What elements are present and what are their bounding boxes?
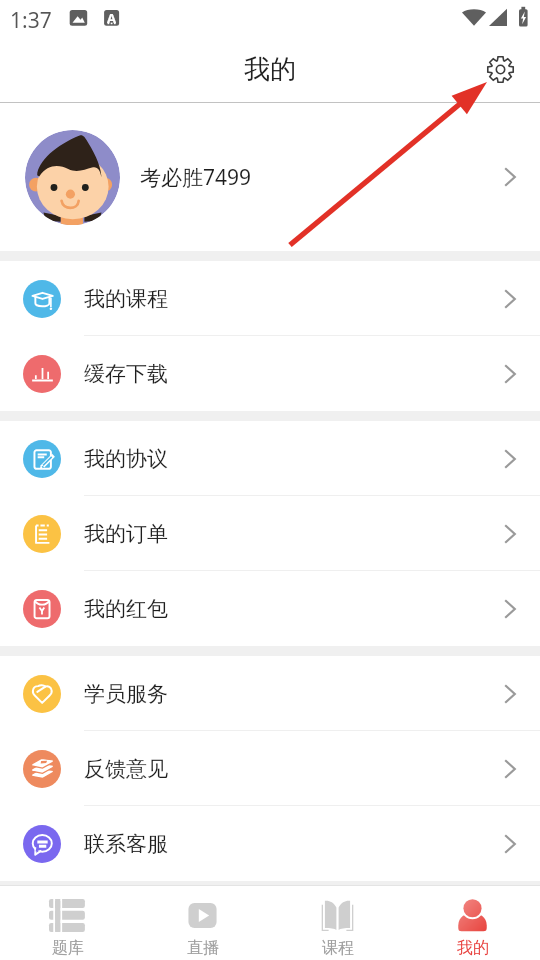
button[interactable]: 联系客服 <box>0 806 540 881</box>
button[interactable]: 反馈意见 <box>0 731 540 806</box>
button[interactable]: 我的协议 <box>0 421 540 496</box>
staticText: 联系客服 <box>84 831 168 857</box>
staticText: A <box>107 9 116 27</box>
staticText: 学员服务 <box>84 681 168 707</box>
staticText: 缓存下载 <box>84 361 168 387</box>
button[interactable]: 我的订单 <box>0 496 540 571</box>
button[interactable]: 考必胜7499 <box>0 103 540 251</box>
staticText: 题库 <box>52 938 84 958</box>
button[interactable]: 题库 <box>0 886 135 960</box>
staticText: 我的订单 <box>84 521 168 547</box>
staticText: 反馈意见 <box>84 756 168 782</box>
staticText: 我的 <box>244 53 296 86</box>
button[interactable]: 缓存下载 <box>0 336 540 411</box>
button[interactable]: 我的红包 <box>0 571 540 646</box>
button[interactable]: 课程 <box>270 886 405 960</box>
button[interactable]: 直播 <box>135 886 270 960</box>
staticText: 我的红包 <box>84 596 168 622</box>
staticText: 直播 <box>187 938 219 958</box>
button[interactable]: 学员服务 <box>0 656 540 731</box>
staticText: 考必胜7499 <box>140 163 252 192</box>
staticText: 我的课程 <box>84 286 168 312</box>
button[interactable]: Settings <box>483 52 517 86</box>
staticText: 我的 <box>457 938 489 958</box>
button[interactable]: 我的课程 <box>0 261 540 336</box>
staticText: 1:37 <box>10 6 52 35</box>
staticText: 课程 <box>322 938 354 958</box>
button[interactable]: 我的 <box>405 886 540 960</box>
staticText: 我的协议 <box>84 446 168 472</box>
